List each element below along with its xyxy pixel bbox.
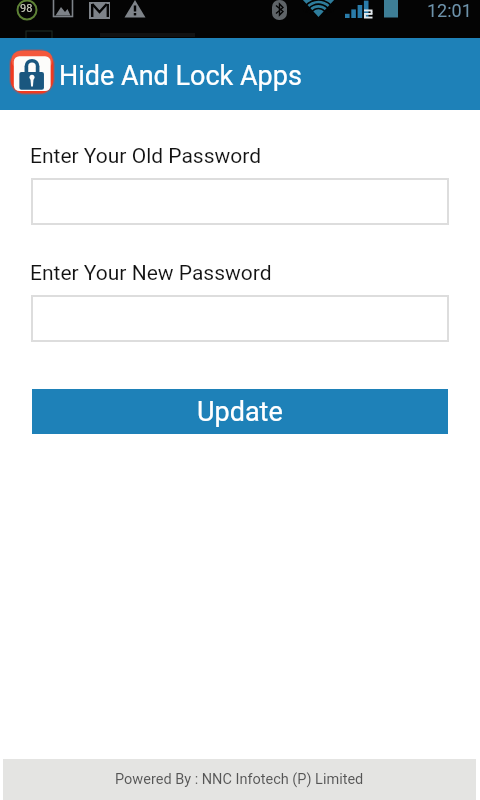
button[interactable]: Update [32,389,448,434]
staticText: 12:01 [427,0,472,21]
staticText: Enter Your Old Password [30,144,262,169]
staticText: 98 [20,2,33,15]
staticText: Enter Your New Password [30,261,272,286]
staticText: Hide And Lock Apps [59,60,302,92]
button[interactable]: Old password [31,178,449,225]
button[interactable]: New password [31,295,449,342]
other: App icon [9,49,55,95]
staticText: Powered By : NNC Infotech (P) Limited [115,771,364,788]
staticText: Update [197,396,283,428]
